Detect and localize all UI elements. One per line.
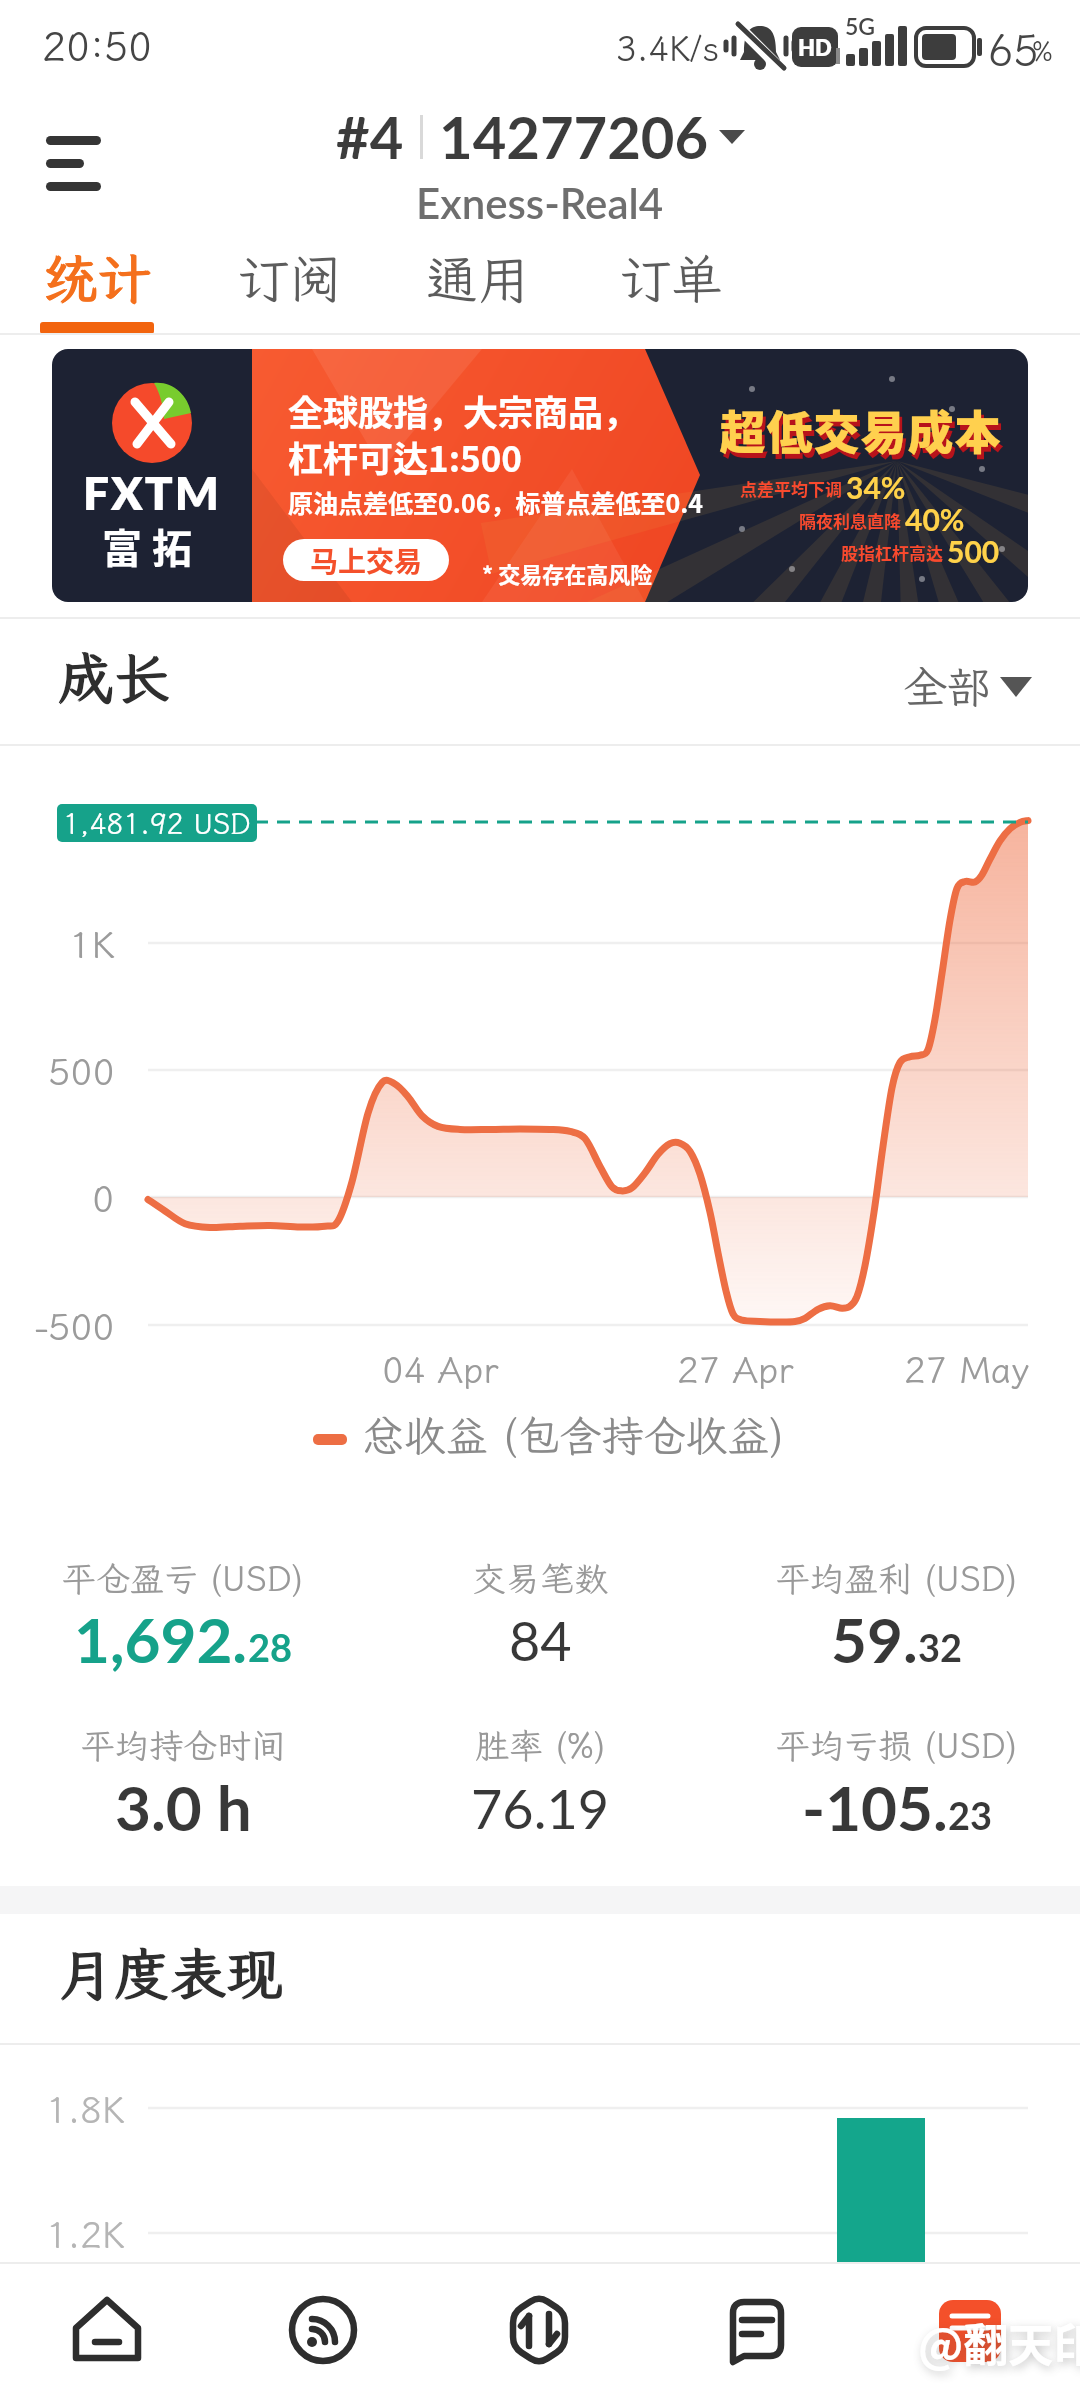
staticText: 订阅 — [237, 244, 342, 312]
staticText: #4 — [336, 102, 404, 172]
staticText: 1.2K — [46, 2211, 125, 2258]
staticText: 0 — [92, 1174, 115, 1223]
staticText: 27 Apr — [677, 1346, 794, 1393]
staticText: 1K — [69, 920, 115, 969]
staticText: 500 — [947, 533, 1000, 569]
staticText: 平均盈利 (USD) — [776, 1556, 1018, 1601]
staticText: * 交易存在高风险 — [482, 557, 653, 589]
staticText: -500 — [35, 1302, 115, 1351]
staticText: 84 — [509, 1608, 572, 1673]
staticText: 月度表现 — [58, 1937, 282, 2011]
staticText: 76.19 — [471, 1776, 610, 1841]
staticText: 股指杠杆高达 — [841, 540, 943, 565]
staticText: 23 — [948, 1792, 993, 1838]
staticText: 平仓盈亏 (USD) — [62, 1556, 304, 1601]
staticText: 总收益 (包含持仓收益) — [362, 1408, 785, 1463]
staticText: 超低交易成本 — [722, 401, 1004, 468]
staticText: 04 Apr — [382, 1346, 499, 1393]
staticText: 59. — [831, 1602, 918, 1676]
staticText: 通用 — [426, 244, 531, 312]
staticText: 32 — [918, 1624, 963, 1670]
staticText: 3.4K/s — [616, 26, 720, 71]
staticText: % — [1032, 34, 1053, 68]
staticText: HD — [798, 34, 832, 60]
staticText: 交易笔数 — [472, 1556, 608, 1601]
staticText: 隔夜利息直降 — [799, 508, 901, 533]
staticText: 平均持仓时间 — [81, 1723, 285, 1768]
staticText: 500 — [48, 1047, 115, 1096]
staticText: 全球股指，大宗商品， — [288, 385, 639, 436]
staticText: @翻天印 — [918, 2310, 1080, 2375]
staticText: 14277206 — [439, 102, 709, 172]
staticText: -105. — [802, 1770, 948, 1844]
staticText: 1.8K — [46, 2086, 125, 2133]
staticText: 胜率 (%) — [475, 1723, 606, 1768]
staticText: 月度表现 — [59, 1936, 283, 2010]
staticText: 统计 — [42, 242, 150, 313]
staticText: 全部 — [903, 658, 991, 716]
staticText: FXTM — [83, 465, 221, 520]
staticText: 平均亏损 (USD) — [776, 1723, 1018, 1768]
staticText: 马上交易 — [310, 540, 423, 581]
staticText: 统计 — [43, 243, 151, 314]
staticText: 订单 — [619, 244, 724, 312]
staticText: 杠杆可达1:500 — [288, 431, 522, 482]
staticText: Exness-Real4 — [416, 178, 664, 228]
staticText: 成长 — [57, 640, 169, 714]
staticText: 超低交易成本 — [719, 396, 1001, 463]
staticText: 月度表现 — [57, 1936, 281, 2010]
staticText: 40% — [905, 501, 965, 537]
staticText: 原油点差低至0.06，标普点差低至0.4 — [288, 484, 704, 520]
staticText: 27 May — [904, 1346, 1030, 1393]
staticText: 65 — [988, 22, 1039, 77]
staticText: 20:50 — [42, 20, 152, 73]
staticText: 成长 — [59, 640, 171, 714]
staticText: 成长 — [58, 641, 170, 715]
staticText: 富拓 — [102, 517, 202, 575]
staticText: 统计 — [44, 242, 152, 313]
staticText: 5G — [845, 12, 876, 40]
staticText: 34% — [846, 469, 906, 505]
staticText: 1,481.92 USD — [63, 805, 251, 842]
staticText: 28 — [248, 1624, 293, 1670]
staticText: 3.0 h — [115, 1770, 252, 1844]
staticText: 点差平均下调 — [740, 476, 842, 501]
staticText: 1,692. — [74, 1602, 248, 1676]
